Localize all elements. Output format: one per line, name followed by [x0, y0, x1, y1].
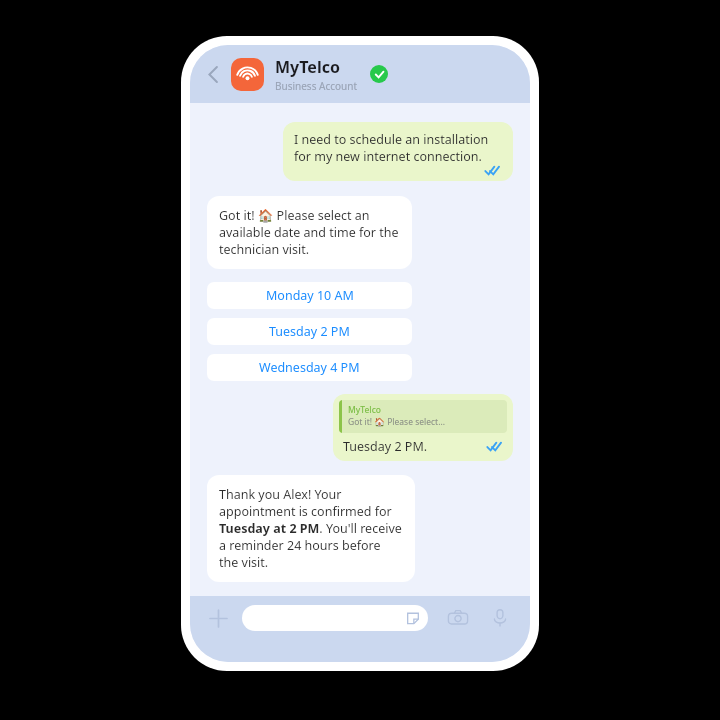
button[interactable]: I need to schedule an installation for m… [283, 122, 513, 181]
staticText: Wednesday 4 PM [259, 359, 360, 376]
staticText: Thank you Alex! Your appointment is conf… [219, 486, 403, 571]
staticText: MyTelco [275, 56, 340, 78]
button[interactable]: Tuesday 2 PM [207, 318, 412, 345]
button[interactable]: Monday 10 AM [207, 282, 412, 309]
staticText: Got it! 🏠 Please select an available dat… [219, 207, 400, 258]
staticText: Business Account [275, 79, 358, 93]
button[interactable]: Camera [444, 604, 472, 632]
button[interactable]: Attach [204, 604, 232, 632]
staticText: Tuesday 2 PM [269, 323, 350, 340]
button[interactable]: Wednesday 4 PM [207, 354, 412, 381]
staticText: Got it! 🏠 Please select... [348, 416, 445, 428]
staticText: MyTelco [348, 404, 382, 416]
button[interactable]: Back [199, 60, 227, 88]
staticText: I need to schedule an installation for m… [294, 131, 503, 165]
button[interactable]: Voice message [486, 604, 514, 632]
button[interactable]: Message [242, 605, 428, 631]
staticText: Monday 10 AM [266, 287, 354, 304]
button[interactable]: Thank you Alex! Your appointment is conf… [207, 475, 415, 582]
staticText: Tuesday 2 PM. [343, 438, 428, 455]
button[interactable]: MyTelco [333, 394, 513, 461]
button[interactable]: MyTelco logo [231, 58, 264, 91]
button[interactable]: Got it! 🏠 Please select an available dat… [207, 196, 412, 269]
